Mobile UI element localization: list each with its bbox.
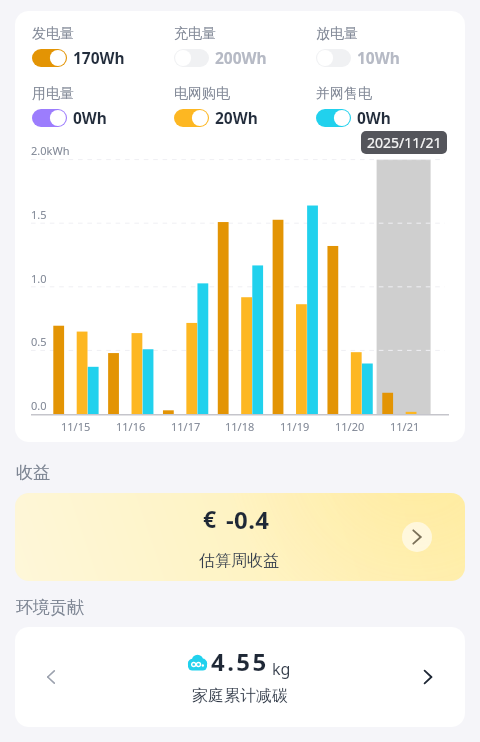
staticText: 0.5 (31, 334, 47, 349)
staticText: 0Wh (73, 107, 107, 128)
staticText: 11/17 (171, 419, 201, 434)
staticText: 10Wh (357, 47, 400, 68)
button[interactable]: Toggle (32, 109, 67, 127)
button[interactable]: € (15, 493, 465, 581)
staticText: kg (272, 658, 291, 680)
staticText: 11/19 (280, 419, 310, 434)
button[interactable]: Previous (36, 662, 66, 692)
button[interactable]: Toggle (174, 49, 209, 67)
button[interactable]: Toggle (32, 49, 67, 67)
staticText: 电网购电 (174, 85, 230, 103)
staticText: 11/21 (390, 419, 420, 434)
staticText: 2025/11/21 (367, 133, 442, 152)
staticText: 11/18 (225, 419, 255, 434)
staticText: 11/20 (335, 419, 365, 434)
staticText: 170Wh (73, 47, 125, 68)
button[interactable]: Toggle (174, 109, 209, 127)
staticText: 1.0 (31, 271, 47, 286)
staticText: 收益 (16, 462, 50, 483)
staticText: 放电量 (316, 25, 358, 43)
staticText: 用电量 (32, 85, 74, 103)
staticText: 环境贡献 (16, 597, 84, 618)
button[interactable]: Earnings details (402, 522, 432, 552)
staticText: 0.0 (31, 398, 47, 413)
staticText: 家庭累计减碳 (192, 686, 288, 706)
staticText: 发电量 (32, 25, 74, 43)
staticText: 并网售电 (316, 85, 372, 103)
staticText: 1.5 (31, 207, 47, 222)
staticText: 200Wh (215, 47, 267, 68)
button[interactable]: Toggle (316, 109, 351, 127)
button[interactable]: Toggle (316, 49, 351, 67)
staticText: € (203, 503, 217, 534)
staticText: 0Wh (357, 107, 391, 128)
staticText: 4.55 (211, 645, 269, 678)
staticText: 11/16 (116, 419, 146, 434)
staticText: 估算周收益 (199, 551, 279, 571)
staticText: 充电量 (174, 25, 216, 43)
staticText: 20Wh (215, 107, 258, 128)
staticText: -0.4 (226, 503, 270, 536)
staticText: 11/15 (61, 419, 91, 434)
button[interactable]: Next (413, 662, 443, 692)
staticText: 2.0kWh (31, 143, 70, 158)
